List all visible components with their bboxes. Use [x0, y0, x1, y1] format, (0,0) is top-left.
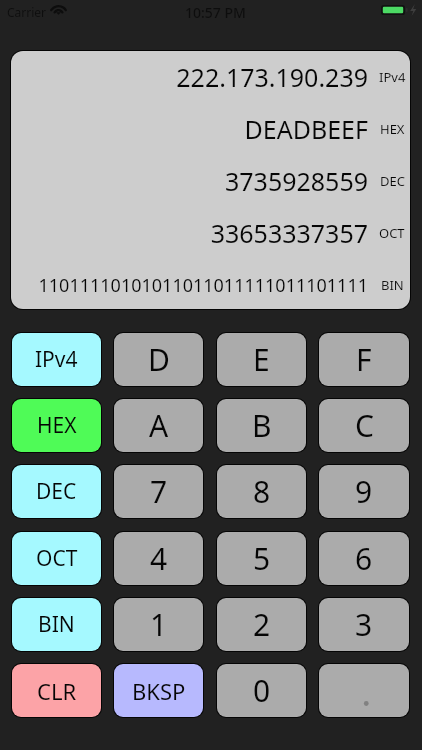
staticText: IPv4 — [35, 345, 78, 374]
staticText: HEX — [37, 411, 77, 440]
staticText: 3735928559 — [224, 164, 368, 198]
staticText: HEX — [380, 120, 405, 138]
staticText: BIN — [381, 276, 404, 294]
staticText: 5 — [253, 538, 271, 579]
button[interactable]: OCT — [12, 532, 101, 585]
staticText: Carrier — [7, 4, 47, 20]
staticText: 2 — [253, 604, 271, 645]
staticText: 1 — [150, 604, 168, 645]
staticText: DEADBEEF — [244, 112, 368, 146]
button[interactable]: E — [217, 333, 306, 386]
button[interactable]: F — [319, 333, 409, 386]
button[interactable]: 3 — [319, 598, 409, 651]
button[interactable]: A — [114, 399, 203, 452]
button[interactable]: CLR — [12, 664, 101, 717]
button[interactable]: Decimal point — [319, 664, 409, 717]
staticText: 7 — [150, 471, 168, 512]
staticText: A — [149, 405, 169, 446]
staticText: OCT — [379, 224, 405, 242]
staticText: 8 — [253, 471, 271, 512]
button[interactable]: 2 — [217, 598, 306, 651]
staticText: 11011110101011011011111011101111 — [38, 273, 368, 298]
button[interactable]: 7 — [114, 465, 203, 518]
button[interactable]: DEC — [12, 465, 101, 518]
staticText: BIN — [38, 610, 75, 639]
button[interactable]: 5 — [217, 532, 306, 585]
staticText: F — [356, 339, 372, 380]
staticText: OCT — [36, 544, 78, 573]
button[interactable]: BKSP — [114, 664, 203, 717]
staticText: DEC — [36, 477, 77, 506]
button[interactable]: 6 — [319, 532, 409, 585]
staticText: 6 — [355, 538, 373, 579]
staticText: D — [148, 339, 170, 380]
staticText: BKSP — [132, 676, 186, 706]
staticText: C — [355, 405, 374, 446]
staticText: B — [252, 405, 272, 446]
button[interactable]: 4 — [114, 532, 203, 585]
button[interactable]: HEX — [12, 399, 101, 452]
staticText: 4 — [150, 538, 168, 579]
staticText: 3 — [355, 604, 373, 645]
button[interactable]: 9 — [319, 465, 409, 518]
staticText: 222.173.190.239 — [176, 60, 368, 94]
staticText: 0 — [253, 670, 271, 711]
button[interactable]: C — [319, 399, 409, 452]
button[interactable]: 1 — [114, 598, 203, 651]
button[interactable]: B — [217, 399, 306, 452]
staticText: DEC — [380, 172, 405, 190]
button[interactable]: 8 — [217, 465, 306, 518]
button[interactable]: IPv4 — [12, 333, 101, 386]
staticText: 33653337357 — [210, 216, 368, 250]
staticText: E — [253, 339, 270, 380]
button[interactable]: BIN — [12, 598, 101, 651]
button[interactable]: 0 — [217, 664, 306, 717]
button[interactable]: D — [114, 333, 203, 386]
staticText: 10:57 PM — [185, 3, 246, 22]
staticText: 9 — [355, 471, 373, 512]
staticText: CLR — [37, 676, 77, 706]
staticText: IPv4 — [379, 68, 406, 86]
